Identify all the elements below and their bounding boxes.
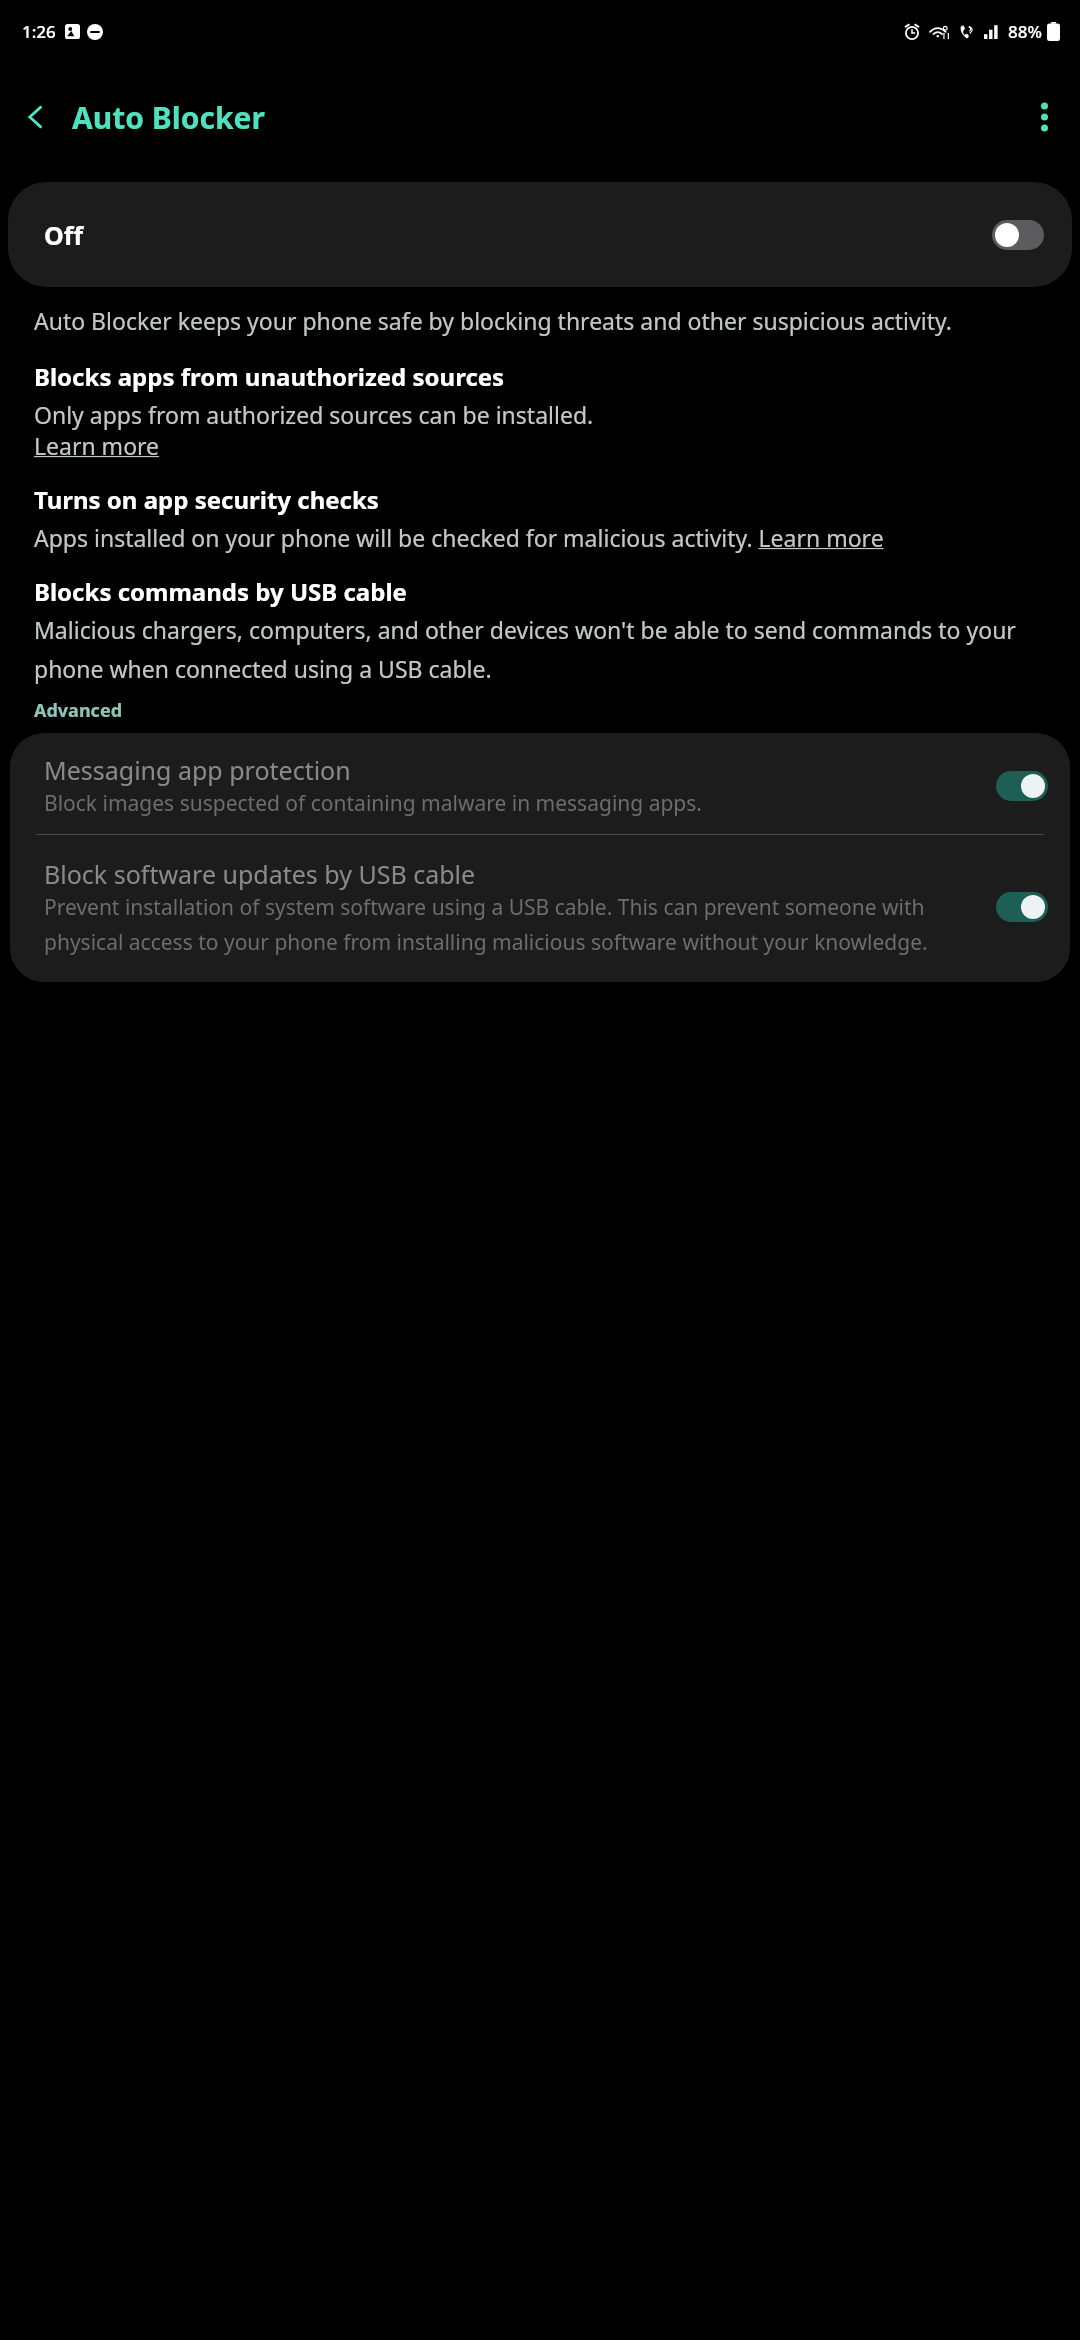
staticText: Block images suspected of containing mal… bbox=[44, 789, 702, 818]
button[interactable]: Learn more bbox=[34, 430, 160, 461]
staticText: Turns on app security checks bbox=[34, 483, 379, 516]
staticText: Block software updates by USB cable bbox=[44, 857, 476, 891]
button[interactable]: Off bbox=[8, 182, 1072, 287]
staticText: Auto Blocker keeps your phone safe by bl… bbox=[34, 305, 952, 336]
staticText: Prevent installation of system software … bbox=[44, 893, 978, 956]
staticText: Learn more bbox=[34, 430, 160, 461]
staticText: Messaging app protection bbox=[44, 753, 351, 787]
button[interactable]: Messaging app protection bbox=[10, 753, 1070, 818]
staticText: Blocks commands by USB cable bbox=[34, 575, 407, 608]
staticText: 1:26 bbox=[22, 20, 56, 43]
staticText: Blocks apps from unauthorized sources bbox=[34, 360, 505, 393]
staticText: Apps installed on your phone will be che… bbox=[34, 522, 884, 553]
staticText: 88% bbox=[1008, 20, 1042, 43]
staticText: Off bbox=[44, 218, 84, 252]
button[interactable]: Back bbox=[0, 81, 72, 153]
staticText: Advanced bbox=[34, 698, 123, 723]
staticText: Auto Blocker bbox=[72, 97, 265, 138]
staticText: Malicious chargers, computers, and other… bbox=[34, 614, 1046, 684]
staticText: Only apps from authorized sources can be… bbox=[34, 399, 594, 430]
button[interactable]: Apps installed on your phone will be che… bbox=[34, 522, 884, 553]
button[interactable]: More options bbox=[1008, 81, 1080, 153]
button[interactable]: Block software updates by USB cable bbox=[10, 857, 1070, 956]
